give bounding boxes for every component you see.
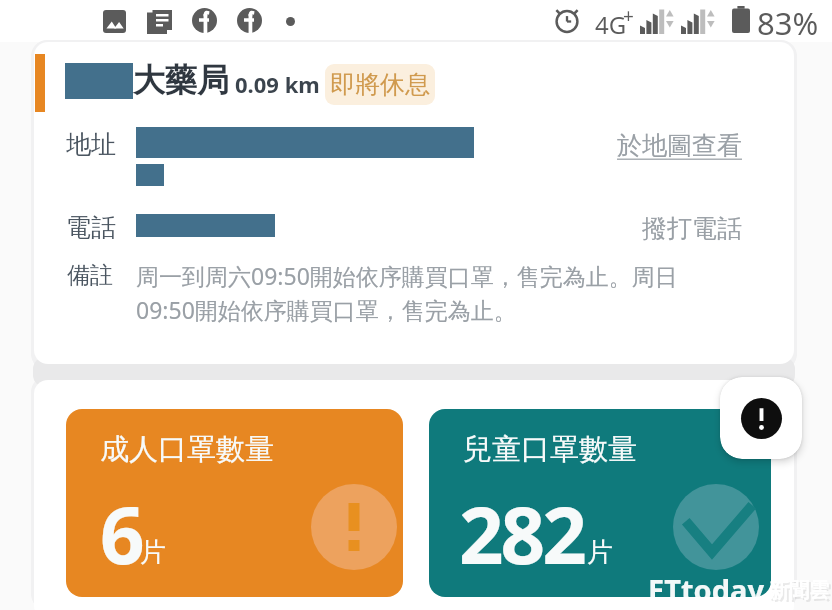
button[interactable]: 即將休息 [330, 64, 430, 105]
staticText: 4G [595, 8, 627, 41]
staticText: 電話 [66, 212, 116, 243]
button[interactable]: Warning [720, 377, 802, 459]
staticText: 備註 [67, 261, 113, 290]
staticText: 片 [140, 536, 166, 569]
staticText: 新聞雲 [771, 580, 831, 605]
button[interactable]: 成人口罩數量 [66, 409, 403, 597]
staticText: 83% [757, 2, 819, 44]
staticText: 成人口罩數量 [100, 431, 274, 468]
staticText: 周一到周六09:50開始依序購買口罩，售完為止。周日 09:50開始依序購買口罩… [136, 260, 678, 326]
staticText: 大藥局 [133, 60, 229, 100]
staticText: 即將休息 [330, 69, 430, 100]
button[interactable]: 兒童口罩數量 [429, 409, 771, 597]
staticText: 撥打電話 [642, 213, 742, 244]
staticText: 282 [459, 481, 584, 587]
staticText: 地址 [66, 129, 116, 160]
staticText: 6 [100, 481, 142, 587]
staticText: 0.09 km [235, 69, 320, 99]
staticText: ETtoday [648, 570, 764, 609]
staticText: 新聞雲 [769, 578, 829, 603]
button[interactable]: 大藥局 [34, 42, 794, 364]
button[interactable]: 撥打電話 [642, 213, 742, 244]
staticText: + [623, 3, 634, 29]
staticText: 片 [587, 536, 613, 569]
staticText: 於地圖查看 [617, 130, 742, 161]
button[interactable]: 於地圖查看 [617, 130, 742, 161]
staticText: 兒童口罩數量 [463, 431, 637, 468]
